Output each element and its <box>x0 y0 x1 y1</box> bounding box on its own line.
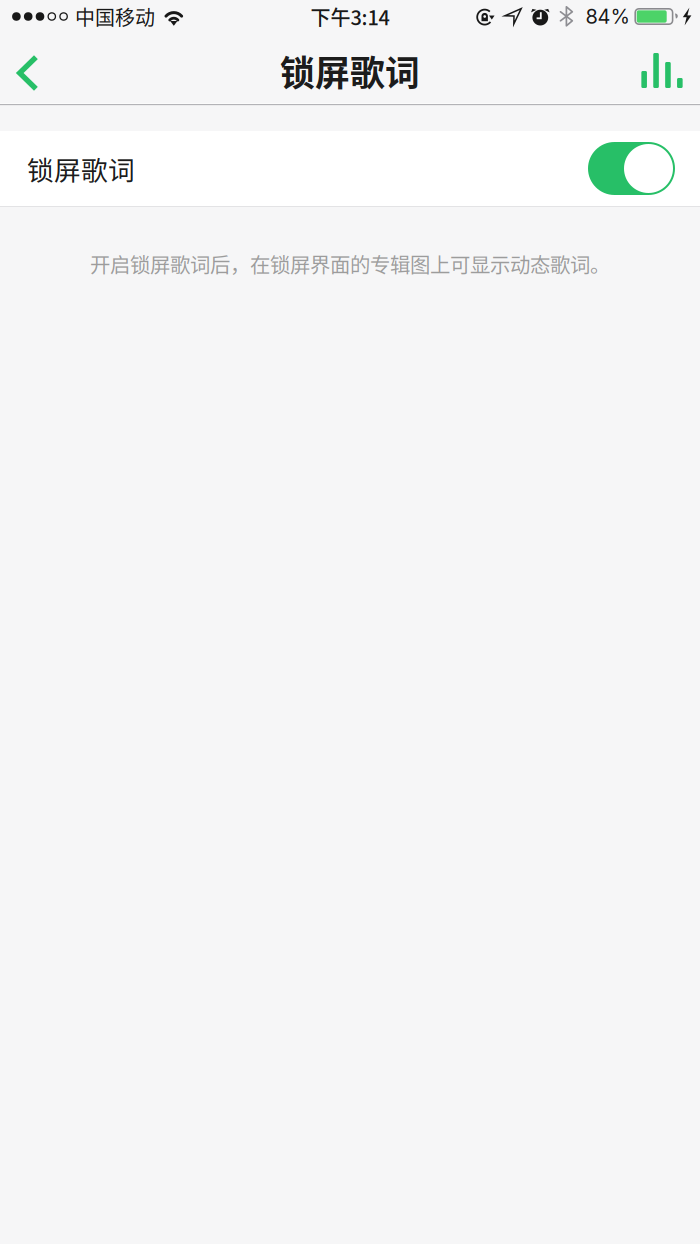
staticText: 开启锁屏歌词后，在锁屏界面的专辑图上可显示动态歌词。 <box>90 249 610 278</box>
staticText: 下午3:14 <box>310 2 389 31</box>
button[interactable]: 锁屏歌词 <box>0 131 700 206</box>
staticText: 锁屏歌词 <box>280 46 420 96</box>
button[interactable]: 返回 <box>0 39 54 103</box>
staticText: 84% <box>585 4 629 29</box>
staticText: 中国移动 <box>75 2 155 31</box>
button[interactable]: 正在播放 <box>632 39 692 103</box>
staticText: 锁屏歌词 <box>27 149 135 188</box>
